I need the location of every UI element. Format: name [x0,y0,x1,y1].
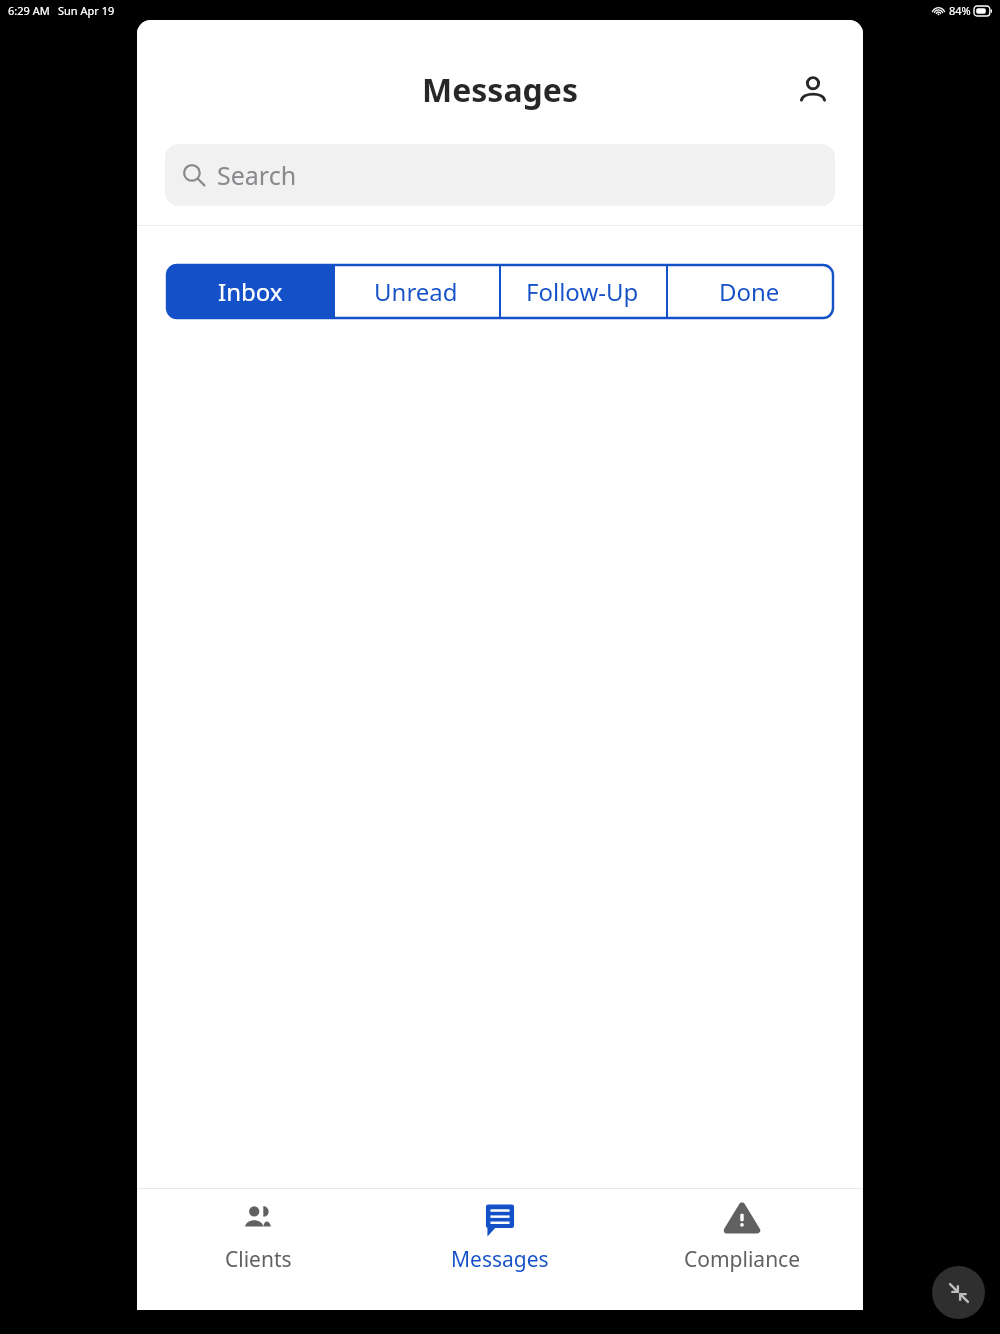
staticText: 6:29 AM [8,3,50,18]
button[interactable]: Done [666,265,833,318]
button[interactable]: Unread [333,265,499,318]
button[interactable]: Compliance [621,1189,863,1285]
button[interactable]: Profile [789,66,837,114]
staticText: Unread [374,275,458,308]
staticText: 84% [949,3,971,18]
staticText: Messages [451,1245,549,1274]
button[interactable]: Search [165,144,835,206]
button[interactable]: Follow-Up [499,265,666,318]
button[interactable]: Inbox [167,265,333,318]
staticText: Messages [422,68,578,112]
button[interactable]: Messages [379,1189,621,1285]
staticText: Inbox [218,275,283,308]
staticText: Done [719,275,780,308]
button[interactable]: Clients [137,1189,379,1285]
staticText: Compliance [684,1245,801,1274]
staticText: Follow-Up [526,275,639,308]
button[interactable]: Collapse [932,1266,985,1319]
staticText: Sun Apr 19 [58,3,115,18]
staticText: Search [217,158,297,192]
staticText: Clients [225,1245,292,1274]
